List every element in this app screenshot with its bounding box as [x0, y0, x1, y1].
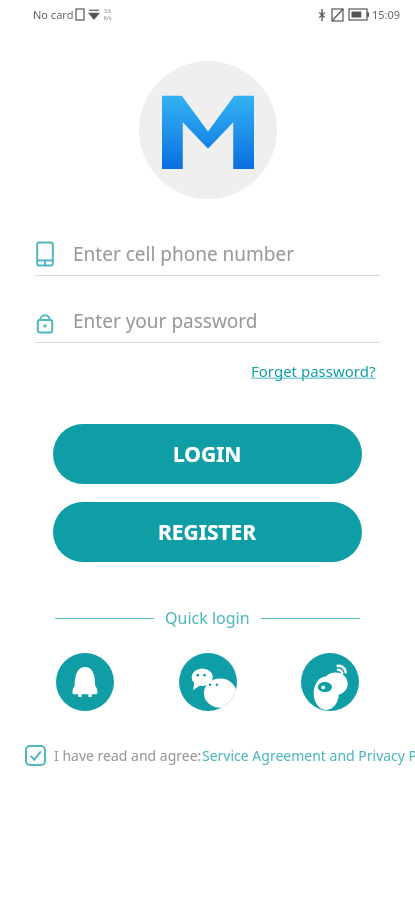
- staticText: REGISTER: [158, 518, 257, 547]
- staticText: LOGIN: [173, 440, 242, 469]
- staticText: Enter your password: [73, 308, 258, 334]
- button[interactable]: I have read and agree:: [26, 746, 415, 765]
- staticText: Quick login: [165, 607, 250, 629]
- button[interactable]: Weibo login: [301, 653, 359, 711]
- button[interactable]: Forget password?: [247, 357, 380, 385]
- staticText: Service Agreement and Privacy Policy: [202, 746, 415, 765]
- staticText: K/s: [104, 15, 112, 22]
- staticText: Enter cell phone number: [73, 241, 295, 267]
- button[interactable]: WeChat login: [179, 653, 237, 711]
- staticText: I have read and agree:: [54, 746, 202, 765]
- button[interactable]: LOGIN: [53, 424, 362, 484]
- staticText: Forget password?: [251, 361, 376, 381]
- staticText: 3.6: [104, 8, 112, 15]
- staticText: No card: [33, 7, 74, 22]
- button[interactable]: QQ login: [56, 653, 114, 711]
- staticText: 15:09: [372, 7, 401, 22]
- button[interactable]: REGISTER: [53, 502, 362, 562]
